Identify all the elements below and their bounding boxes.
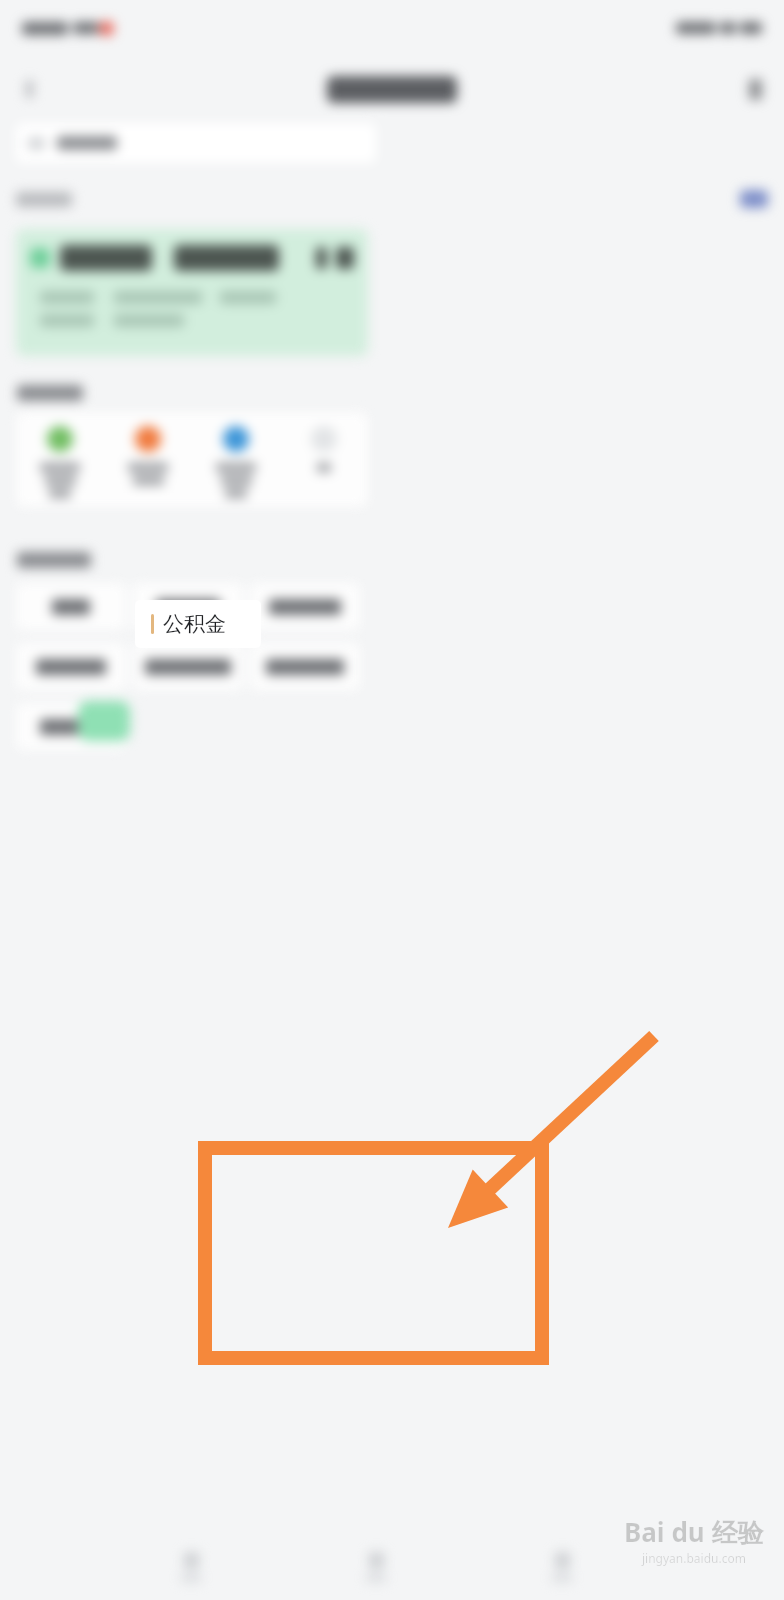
button[interactable]: Quick action <box>280 426 368 476</box>
staticText: jingyan.baidu.com <box>642 1550 746 1566</box>
button[interactable]: Tab 1 <box>119 1534 262 1600</box>
button[interactable] <box>16 229 368 356</box>
button[interactable] <box>133 583 243 630</box>
button[interactable]: Quick action <box>192 426 280 502</box>
button[interactable]: Tab 2 <box>304 1534 448 1600</box>
button[interactable] <box>16 643 126 690</box>
button[interactable] <box>740 190 768 208</box>
button[interactable]: 公积金 <box>135 600 261 648</box>
button[interactable]: Quick action <box>104 426 192 489</box>
button[interactable]: Quick action <box>16 426 104 502</box>
button[interactable]: Tab 3 <box>490 1534 634 1600</box>
button[interactable]: Back <box>16 76 42 102</box>
staticText: Bai du 经验 <box>624 1514 764 1550</box>
button[interactable] <box>16 703 126 750</box>
button[interactable] <box>16 583 126 630</box>
button[interactable] <box>250 583 360 630</box>
staticText: 公积金 <box>163 611 226 637</box>
button[interactable] <box>133 643 243 690</box>
button[interactable] <box>250 643 360 690</box>
button[interactable]: More <box>742 76 768 102</box>
button[interactable] <box>16 123 376 163</box>
